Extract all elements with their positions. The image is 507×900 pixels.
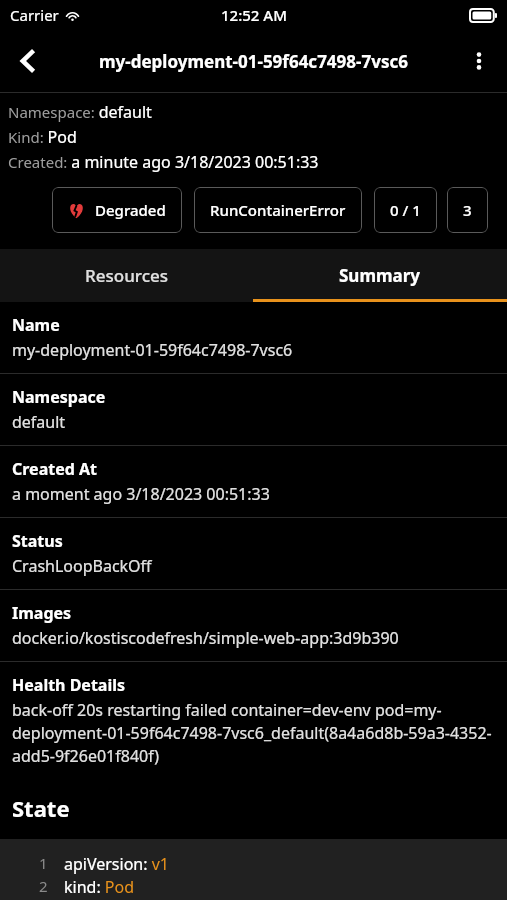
staticText: Namespace bbox=[12, 386, 106, 408]
button[interactable]: Resources bbox=[0, 249, 253, 302]
staticText: kind: Pod bbox=[64, 876, 135, 898]
staticText: Carrier bbox=[10, 5, 59, 25]
button[interactable]: Namespace bbox=[0, 374, 507, 445]
button[interactable]: Created At bbox=[0, 446, 507, 517]
staticText: State bbox=[12, 793, 70, 823]
staticText: Summary bbox=[339, 264, 421, 287]
staticText: docker.io/kostiscodefresh/simple-web-app… bbox=[12, 627, 399, 649]
staticText: Images bbox=[12, 602, 72, 624]
staticText: Namespace: default bbox=[8, 101, 152, 123]
button[interactable]: Images bbox=[0, 590, 507, 661]
staticText: 0 / 1 bbox=[390, 200, 421, 220]
staticText: RunContainerError bbox=[210, 200, 346, 220]
button[interactable]: Name bbox=[0, 302, 507, 373]
button[interactable]: Back bbox=[0, 33, 56, 89]
staticText: Created At bbox=[12, 458, 98, 480]
staticText: my-deployment-01-59f64c7498-7vsc6 bbox=[12, 339, 293, 361]
button[interactable]: More options bbox=[451, 33, 507, 89]
button[interactable]: 0 / 1 bbox=[374, 187, 437, 233]
button[interactable]: Degraded bbox=[52, 187, 182, 233]
button[interactable]: Status bbox=[0, 518, 507, 589]
staticText: 12:52 AM bbox=[221, 5, 287, 25]
button[interactable]: Health Details bbox=[0, 662, 507, 779]
staticText: 2 bbox=[39, 876, 48, 896]
staticText: default bbox=[12, 411, 66, 433]
staticText: Degraded bbox=[95, 200, 166, 220]
staticText: Kind: Pod bbox=[8, 126, 77, 148]
staticText: CrashLoopBackOff bbox=[12, 555, 152, 577]
staticText: my-deployment-01-59f64c7498-7vsc6 bbox=[99, 50, 408, 73]
staticText: Name bbox=[12, 314, 60, 336]
staticText: Resources bbox=[85, 264, 169, 287]
button[interactable]: RunContainerError bbox=[194, 187, 362, 233]
staticText: a moment ago 3/18/2023 00:51:33 bbox=[12, 483, 270, 505]
button[interactable]: Summary bbox=[253, 249, 507, 302]
staticText: 3 bbox=[463, 200, 472, 220]
staticText: Status bbox=[12, 530, 63, 552]
staticText: apiVersion: v1 bbox=[64, 853, 169, 875]
staticText: Health Details bbox=[12, 674, 126, 696]
button[interactable]: 3 bbox=[447, 187, 488, 233]
staticText: back-off 20s restarting failed container… bbox=[12, 699, 495, 767]
staticText: Created: a minute ago 3/18/2023 00:51:33 bbox=[8, 151, 319, 173]
staticText: 1 bbox=[39, 853, 48, 873]
